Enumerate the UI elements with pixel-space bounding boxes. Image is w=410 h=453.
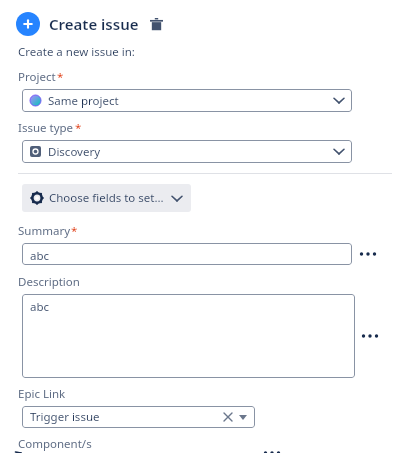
button[interactable]: More: [358, 325, 382, 347]
staticText: Create a new issue in:: [18, 44, 135, 60]
staticText: Create issue: [49, 14, 139, 34]
button[interactable]: Create issue: [16, 12, 165, 36]
button[interactable]: Trigger issue: [22, 406, 255, 428]
staticText: *: [57, 69, 64, 85]
button[interactable]: Discovery: [22, 140, 352, 163]
staticText: Component/s: [18, 436, 92, 452]
staticText: *: [71, 223, 78, 239]
button[interactable]: More: [356, 243, 380, 265]
staticText: Choose fields to set…: [49, 190, 164, 206]
button[interactable]: abc: [22, 294, 355, 378]
staticText: Summary: [18, 223, 70, 239]
staticText: abc: [30, 248, 50, 260]
staticText: Description: [18, 274, 80, 290]
staticText: abc: [30, 299, 50, 315]
staticText: Project: [18, 69, 56, 85]
staticText: Same project: [48, 93, 119, 109]
staticText: Issue type: [18, 120, 74, 136]
staticText: Epic Link: [18, 386, 66, 402]
button[interactable]: Same project: [22, 89, 352, 112]
button[interactable]: abc: [22, 243, 352, 265]
staticText: Discovery: [48, 144, 101, 160]
staticText: Trigger issue: [30, 409, 100, 425]
staticText: *: [75, 120, 82, 136]
button[interactable]: Choose fields to set…: [22, 184, 191, 212]
button[interactable]: Delete: [147, 15, 165, 33]
